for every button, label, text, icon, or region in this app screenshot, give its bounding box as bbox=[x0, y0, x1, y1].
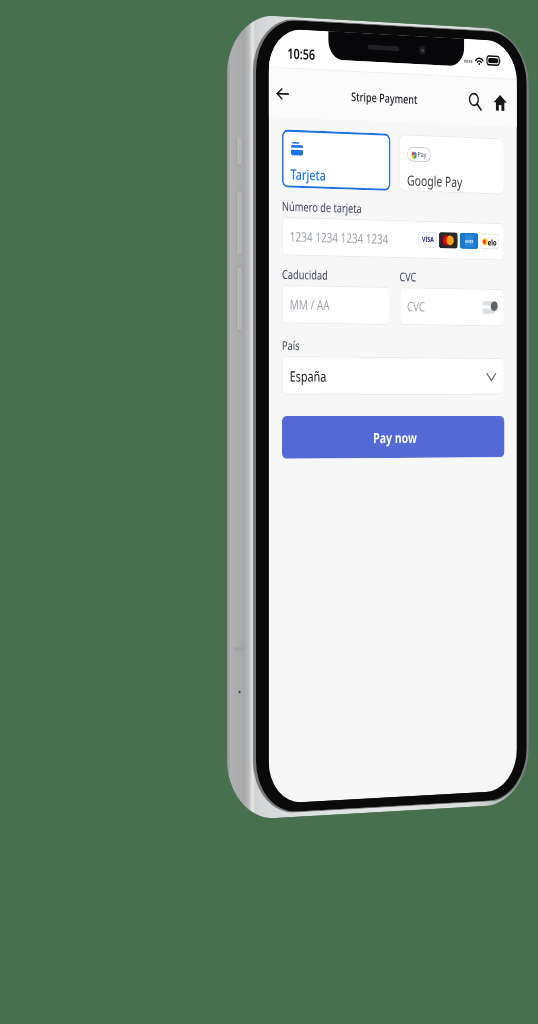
button[interactable]: MM / AA bbox=[282, 285, 390, 325]
staticText: Número de tarjeta bbox=[282, 197, 362, 216]
staticText: MM / AA bbox=[290, 295, 330, 314]
staticText: Tarjeta bbox=[290, 164, 326, 185]
staticText: España bbox=[290, 366, 327, 386]
button[interactable]: Search bbox=[463, 84, 488, 119]
staticText: 10:56 bbox=[287, 43, 315, 64]
button[interactable]: Tarjeta bbox=[282, 129, 390, 191]
button[interactable]: Pay bbox=[399, 134, 504, 195]
button[interactable]: España bbox=[282, 356, 504, 395]
button[interactable]: 1234 1234 1234 1234 bbox=[282, 217, 504, 260]
staticText: Stripe Payment bbox=[351, 88, 417, 107]
button[interactable]: Back bbox=[269, 75, 296, 112]
staticText: Pay now bbox=[373, 428, 417, 447]
button[interactable]: CVC bbox=[399, 287, 504, 326]
staticText: VISA bbox=[422, 235, 434, 245]
button[interactable]: Pay now bbox=[282, 416, 504, 459]
button[interactable]: Home bbox=[488, 85, 512, 120]
staticText: 1234 1234 1234 1234 bbox=[290, 227, 389, 248]
staticText: Pay bbox=[417, 150, 426, 160]
staticText: País bbox=[282, 337, 300, 353]
staticText: CVC bbox=[407, 297, 426, 315]
staticText: AMEX bbox=[465, 239, 474, 244]
staticText: Google Pay bbox=[407, 170, 463, 191]
staticText: elo bbox=[488, 236, 497, 247]
staticText: Caducidad bbox=[282, 266, 328, 283]
staticText: CVC bbox=[399, 268, 417, 284]
